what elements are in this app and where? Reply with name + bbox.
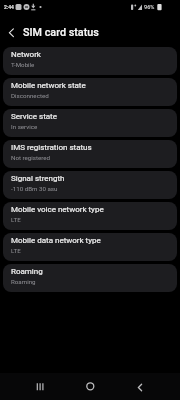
button[interactable] [120,373,180,400]
button[interactable]: Service state [3,109,177,137]
staticText: -110 dBm 30 asu [11,185,58,192]
button[interactable]: IMS registration status [3,140,177,168]
button[interactable] [0,373,60,400]
staticText: Roaming [11,267,43,276]
staticText: LTE [11,216,21,223]
staticText: Mobile data network type [11,236,101,245]
button[interactable] [0,13,20,47]
staticText: SIM card status [23,26,99,39]
button[interactable]: Mobile data network type [3,233,177,261]
staticText: Not registered [11,154,51,161]
staticText: 96% [144,4,155,11]
staticText: Mobile voice network type [11,205,104,214]
button[interactable]: Mobile network state [3,78,177,106]
button[interactable]: Roaming [3,264,177,292]
button[interactable] [60,373,120,400]
staticText: 2:44 [4,4,14,10]
staticText: Signal strength [11,174,65,183]
button[interactable]: Mobile voice network type [3,202,177,230]
staticText: IMS registration status [11,143,92,152]
staticText: Mobile network state [11,81,86,90]
staticText: LTE [11,247,21,254]
staticText: Roaming [11,278,36,285]
button[interactable]: Network [3,47,177,75]
staticText: Network [11,50,41,59]
button[interactable]: Signal strength [3,171,177,199]
staticText: Service state [11,112,57,121]
staticText: T-Mobile [11,61,35,68]
staticText: Disconnected [11,92,49,99]
staticText: In service [11,123,38,130]
